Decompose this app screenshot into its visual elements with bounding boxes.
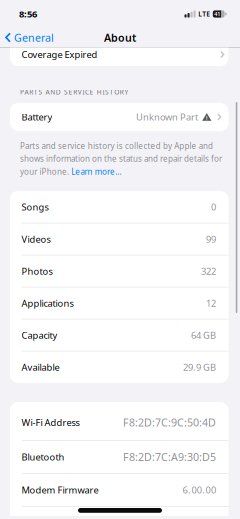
staticText: General [14, 30, 54, 45]
staticText: F8:2D:7C:A9:30:D5 [123, 450, 216, 464]
staticText: About [104, 30, 136, 45]
staticText: 8:56 [19, 8, 37, 20]
staticText: Available [21, 361, 59, 373]
staticText: LTE [198, 10, 210, 18]
staticText: 6.00.00 [183, 484, 216, 496]
staticText: 29.9 GB [183, 361, 216, 373]
staticText: shows information on the status and repa… [20, 153, 222, 164]
staticText: Bluetooth [21, 451, 64, 463]
button[interactable]: General [0, 30, 54, 45]
staticText: Learn more... [71, 166, 121, 177]
staticText: Applications [21, 297, 73, 309]
staticText: Songs [21, 201, 48, 213]
staticText: 99 [206, 233, 216, 245]
staticText: 0 [211, 201, 216, 213]
staticText: Battery [21, 111, 52, 123]
staticText: Unknown Part [136, 111, 198, 123]
staticText: Photos [21, 265, 52, 277]
staticText: F8:2D:7C:9C:50:4D [123, 415, 216, 430]
staticText: Capacity [21, 329, 57, 341]
staticText: PARTS AND SERVICE HISTORY [20, 88, 128, 96]
staticText: your iPhone. [20, 166, 71, 177]
staticText: Wi-Fi Address [21, 416, 79, 429]
button[interactable]: Battery [0, 103, 240, 131]
staticText: ! [206, 115, 208, 122]
staticText: Videos [21, 233, 50, 245]
staticText: 322 [201, 265, 216, 277]
staticText: 64 GB [191, 329, 216, 341]
button[interactable]: Coverage Expired [0, 48, 240, 66]
staticText: Coverage Expired [21, 48, 97, 61]
staticText: 41 [214, 10, 220, 18]
button[interactable]: Learn more... [71, 166, 121, 177]
staticText: 12 [206, 297, 216, 309]
staticText: Modem Firmware [21, 484, 98, 496]
staticText: Parts and service history is collected b… [20, 140, 213, 151]
